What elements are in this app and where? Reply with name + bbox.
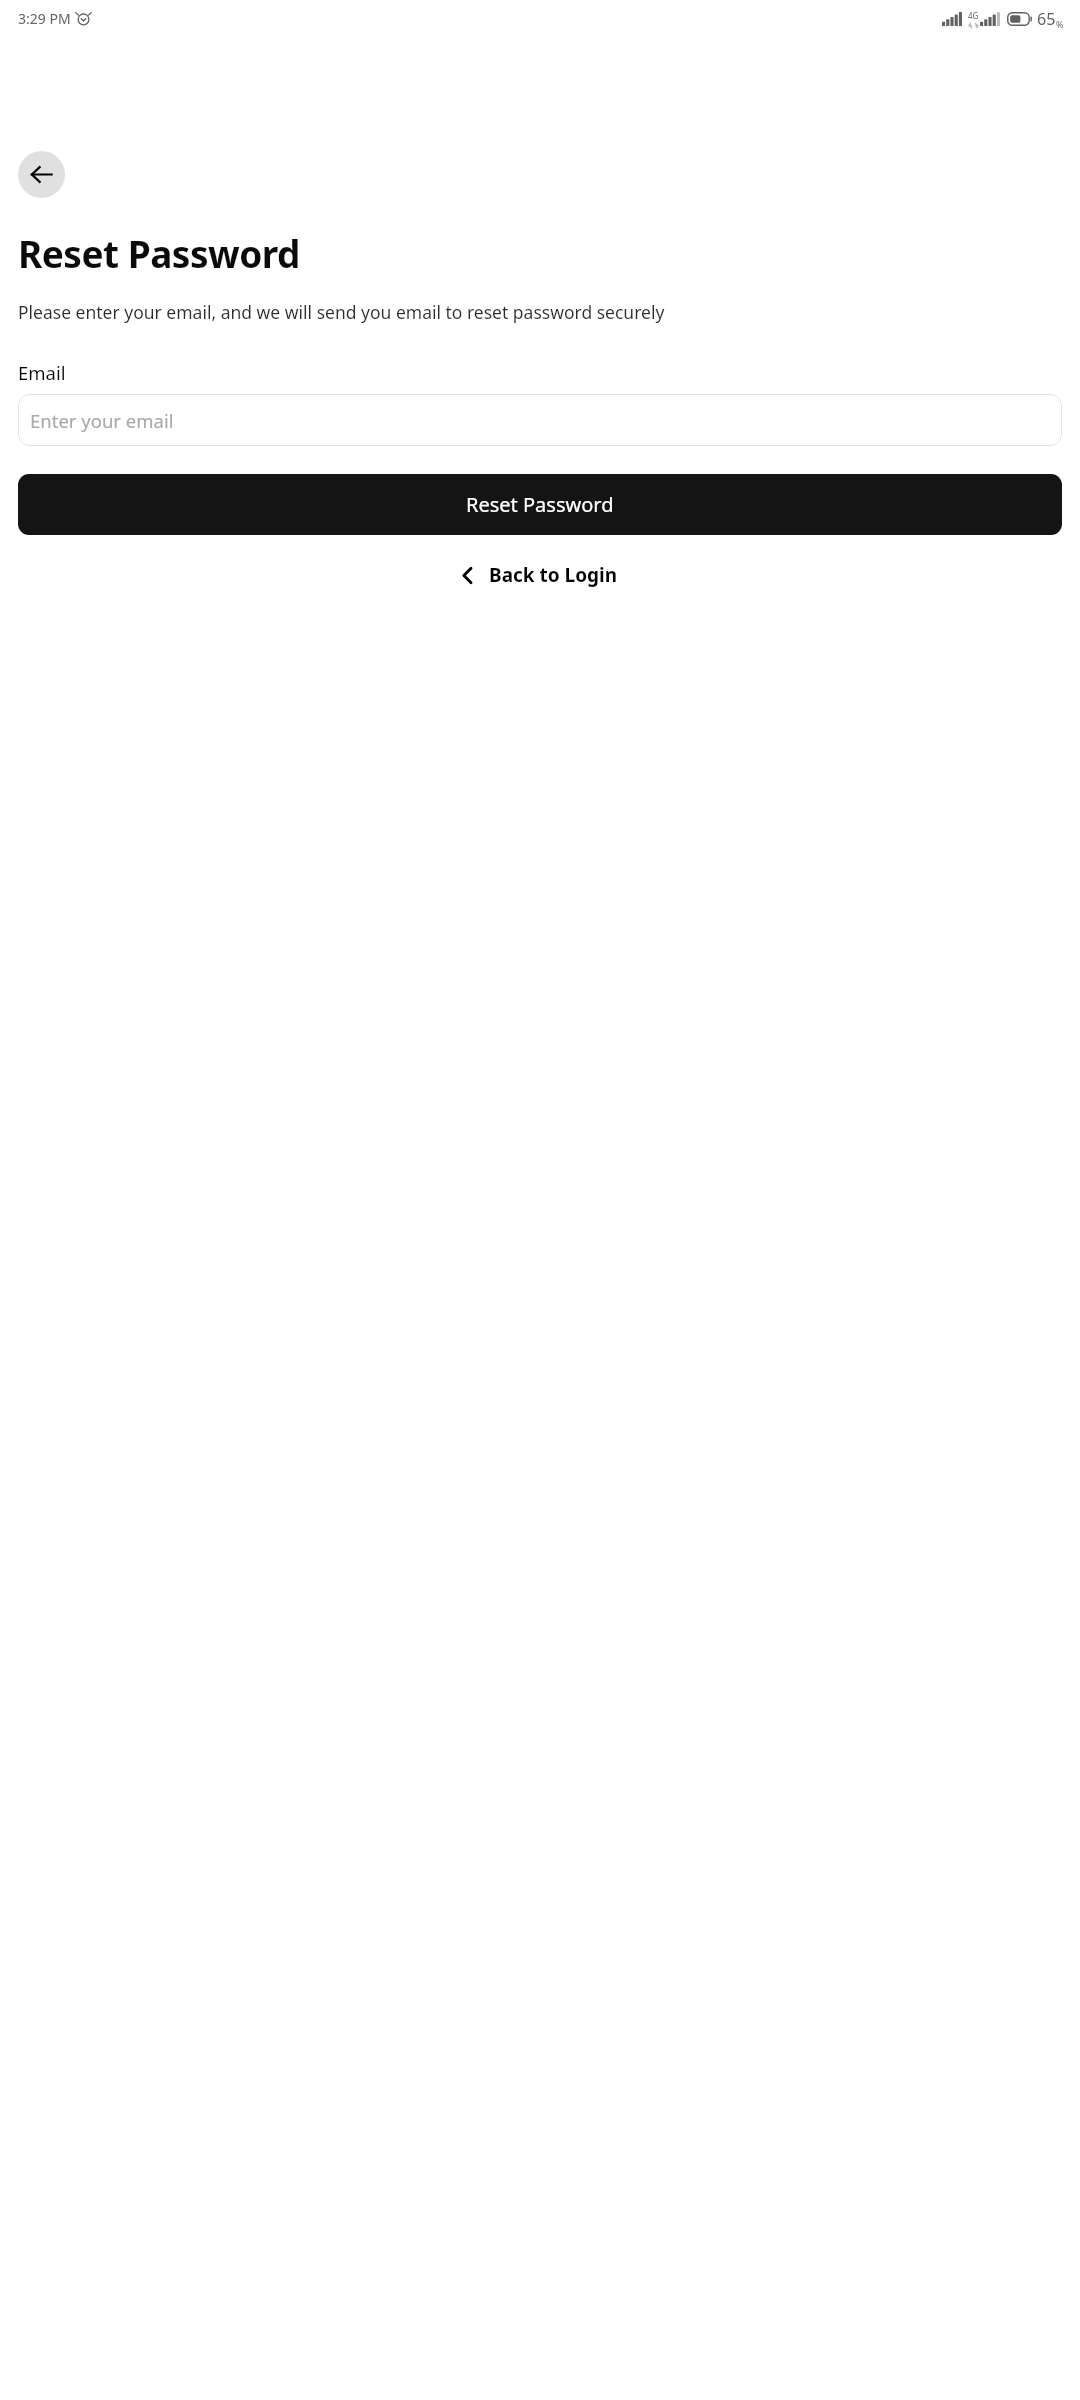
button[interactable]: Back	[18, 151, 65, 198]
button[interactable]: Reset Password	[18, 474, 1062, 535]
staticText: Email	[18, 360, 66, 385]
button[interactable]: Enter your email	[18, 394, 1062, 446]
staticText: 4G	[968, 10, 979, 21]
staticText: Enter your email	[30, 408, 174, 433]
staticText: 65	[1037, 8, 1056, 30]
staticText: 3:29 PM	[18, 9, 71, 28]
button[interactable]: Back to Login	[448, 555, 632, 595]
staticText: Reset Password	[18, 228, 300, 278]
staticText: %	[1056, 18, 1064, 30]
staticText: Please enter your email, and we will sen…	[18, 300, 665, 324]
staticText: Reset Password	[466, 491, 614, 518]
staticText: Back to Login	[489, 562, 618, 588]
